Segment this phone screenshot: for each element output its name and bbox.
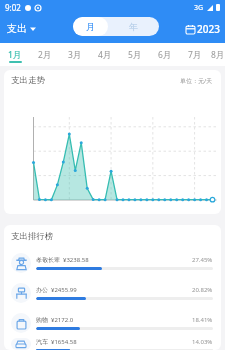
staticText: 6月 [158,49,172,61]
staticText: ¥3238.58 [63,256,89,264]
staticText: 月 [86,21,95,32]
other: Office [15,287,28,300]
staticText: 20.82% [192,286,213,294]
other: Shopping [15,317,28,330]
staticText: 5月 [128,49,142,61]
button[interactable]: Select year [186,22,220,36]
button[interactable]: 3月 [60,43,90,66]
other: Select year [186,25,195,34]
button[interactable]: 7月 [180,43,210,66]
staticText: 18.41% [192,316,213,324]
button[interactable]: 年 [108,17,159,36]
staticText: 3月 [68,49,82,61]
button[interactable]: 8月 [210,43,225,66]
button[interactable]: 5月 [120,43,150,66]
staticText: ¥2455.99 [51,286,77,294]
other: Elders [15,257,28,270]
staticText: 9:02 [5,2,21,13]
staticText: 汽车 [36,338,48,346]
staticText: 7月 [188,49,202,61]
staticText: 1月 [8,49,22,61]
button[interactable]: 支出 [7,22,36,35]
button[interactable]: Shopping [11,308,213,338]
staticText: 4月 [98,49,112,61]
staticText: 27.45% [192,256,213,264]
staticText: 办公 [36,286,48,294]
button[interactable]: 6月 [150,43,180,66]
button[interactable]: Office [11,278,213,308]
button[interactable]: Car [11,338,213,350]
button[interactable]: 4月 [90,43,120,66]
staticText: 8月 [211,49,225,61]
staticText: ¥1654.58 [51,338,77,346]
staticText: 支出排行榜 [11,231,54,242]
other: Car [15,338,28,350]
staticText: 支出 [7,22,27,35]
staticText: ¥2172.0 [51,316,74,324]
staticText: 年 [129,21,138,32]
staticText: 14.03% [192,338,213,346]
button[interactable]: 月 [73,17,108,36]
staticText: 单位：元/天 [180,77,213,85]
staticText: 2月 [38,49,52,61]
staticText: 支出走势 [11,75,45,86]
staticText: 孝敬长辈 [36,256,60,264]
staticText: 2023 [197,22,220,36]
button[interactable]: 2月 [30,43,60,66]
staticText: 3G [194,3,204,13]
staticText: 购物 [36,316,48,324]
button[interactable]: 1月 [0,43,30,66]
button[interactable]: Elders [11,248,213,278]
